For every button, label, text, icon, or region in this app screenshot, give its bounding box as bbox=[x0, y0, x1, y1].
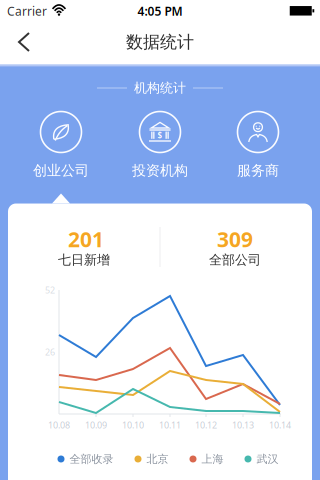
staticText: 服务商 bbox=[237, 162, 279, 179]
staticText: Carrier bbox=[7, 3, 47, 19]
button[interactable]: 创业公司 bbox=[33, 110, 89, 187]
staticText: 创业公司 bbox=[33, 162, 89, 179]
staticText: 全部收录 bbox=[69, 452, 113, 466]
staticText: 10.11 bbox=[159, 419, 181, 431]
staticText: 10.08 bbox=[48, 419, 70, 431]
staticText: 机构统计 bbox=[134, 80, 186, 96]
staticText: 10.12 bbox=[195, 419, 217, 431]
staticText: $ bbox=[157, 130, 162, 140]
staticText: 201 bbox=[68, 225, 104, 253]
staticText: 10.14 bbox=[269, 419, 291, 431]
staticText: 北京 bbox=[146, 452, 168, 466]
staticText: 10.13 bbox=[232, 419, 254, 431]
staticText: 投资机构 bbox=[132, 162, 188, 179]
button[interactable]: 服务商 bbox=[236, 110, 279, 187]
staticText: 武汉 bbox=[256, 452, 278, 466]
staticText: 52 bbox=[45, 284, 55, 296]
staticText: 10.10 bbox=[122, 419, 144, 431]
staticText: 数据统计 bbox=[126, 32, 194, 52]
staticText: 上海 bbox=[201, 452, 223, 466]
button[interactable]: $ bbox=[132, 110, 188, 187]
staticText: 4:05 PM bbox=[137, 3, 182, 19]
button[interactable]: Back bbox=[5, 20, 41, 64]
staticText: 26 bbox=[45, 346, 55, 358]
staticText: 七日新增 bbox=[58, 252, 110, 268]
staticText: 10.09 bbox=[85, 419, 107, 431]
staticText: 309 bbox=[217, 225, 253, 253]
staticText: 全部公司 bbox=[209, 252, 261, 268]
